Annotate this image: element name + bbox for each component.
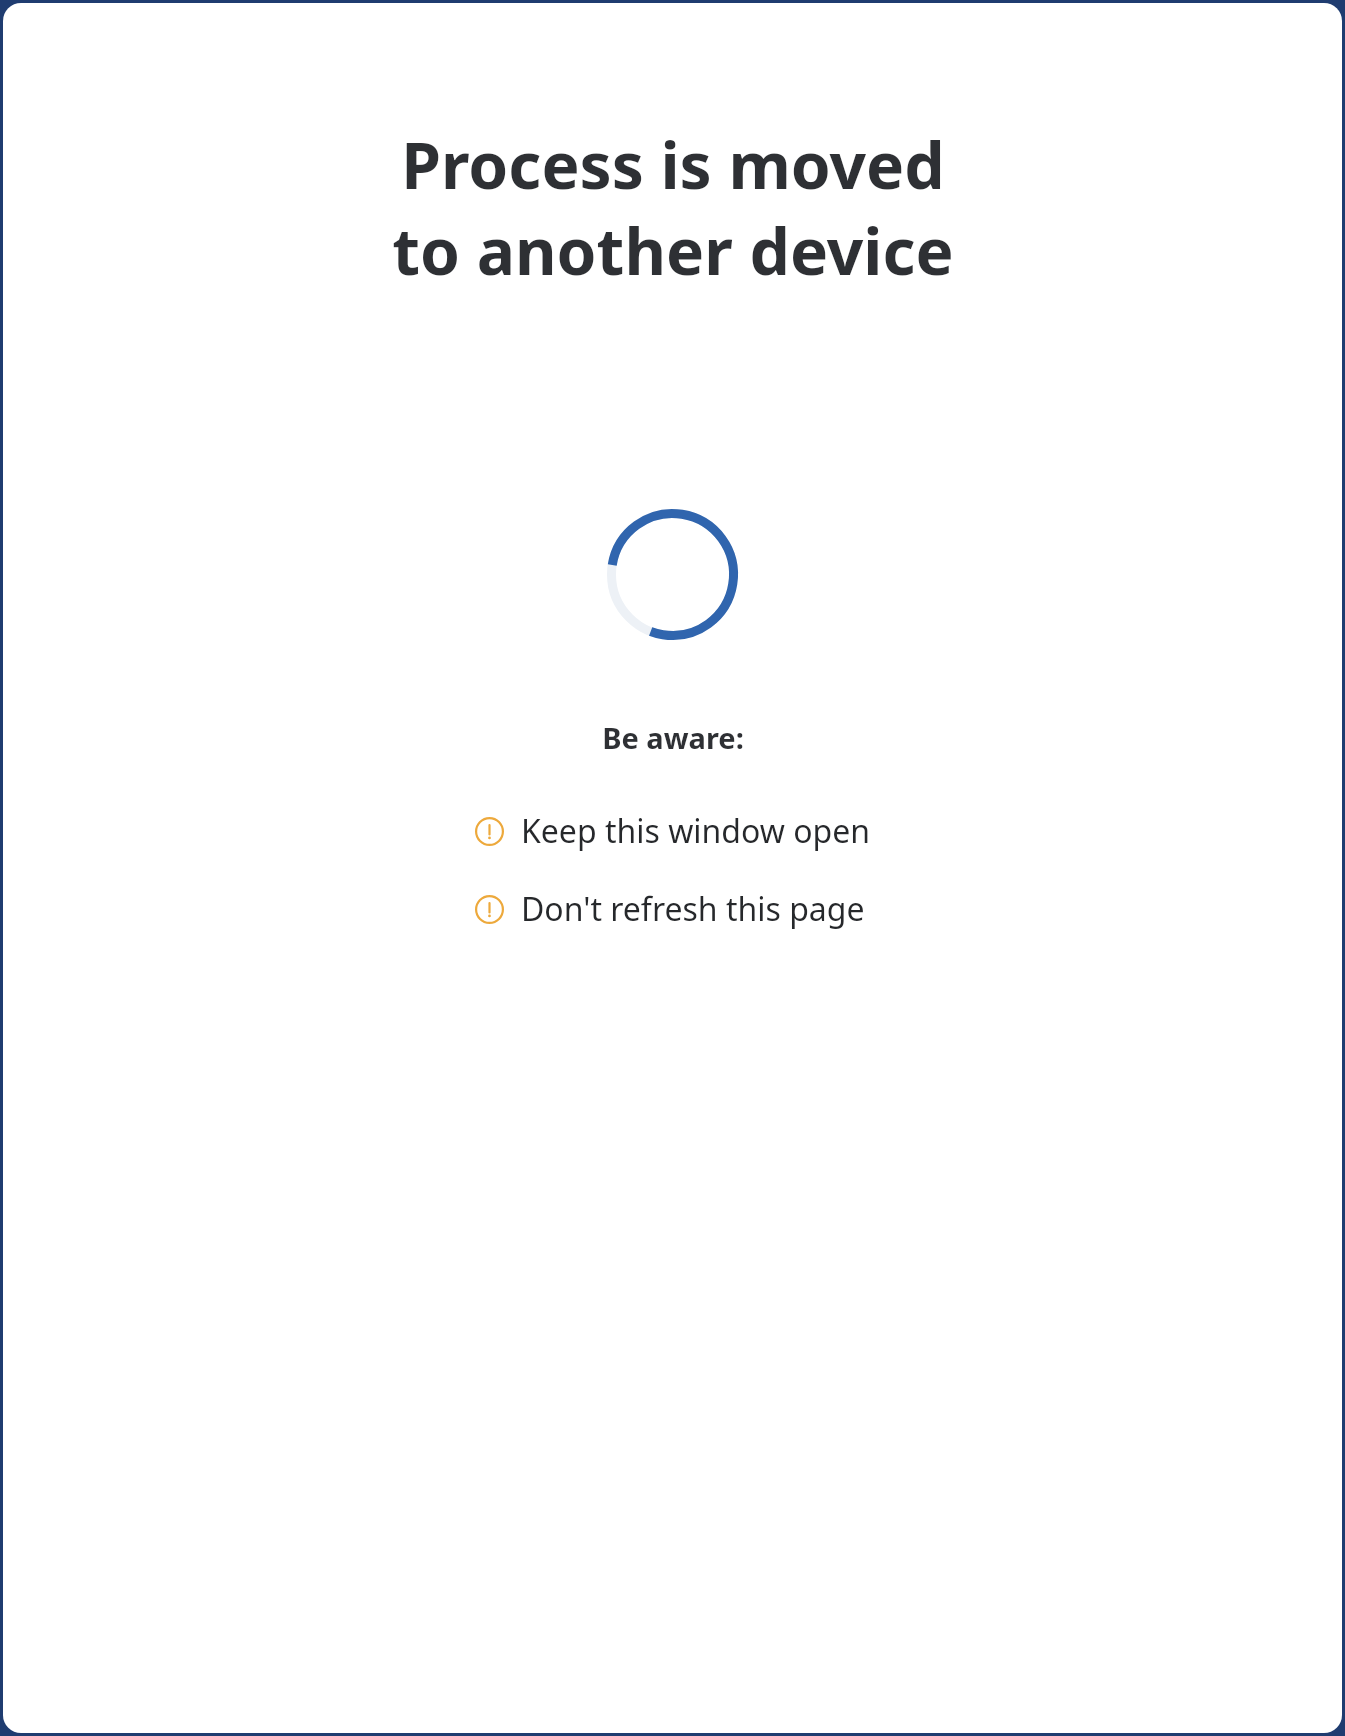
button[interactable]: Warning bbox=[475, 805, 871, 857]
button[interactable]: Warning bbox=[475, 883, 871, 935]
other: Loading bbox=[607, 509, 738, 640]
staticText: Be aware: bbox=[602, 718, 744, 757]
other: Warning bbox=[475, 895, 504, 924]
other: Warning bbox=[475, 817, 504, 846]
staticText: Don't refresh this page bbox=[521, 887, 865, 931]
staticText: Process is moved to another device bbox=[392, 121, 954, 294]
staticText: Keep this window open bbox=[521, 809, 871, 853]
